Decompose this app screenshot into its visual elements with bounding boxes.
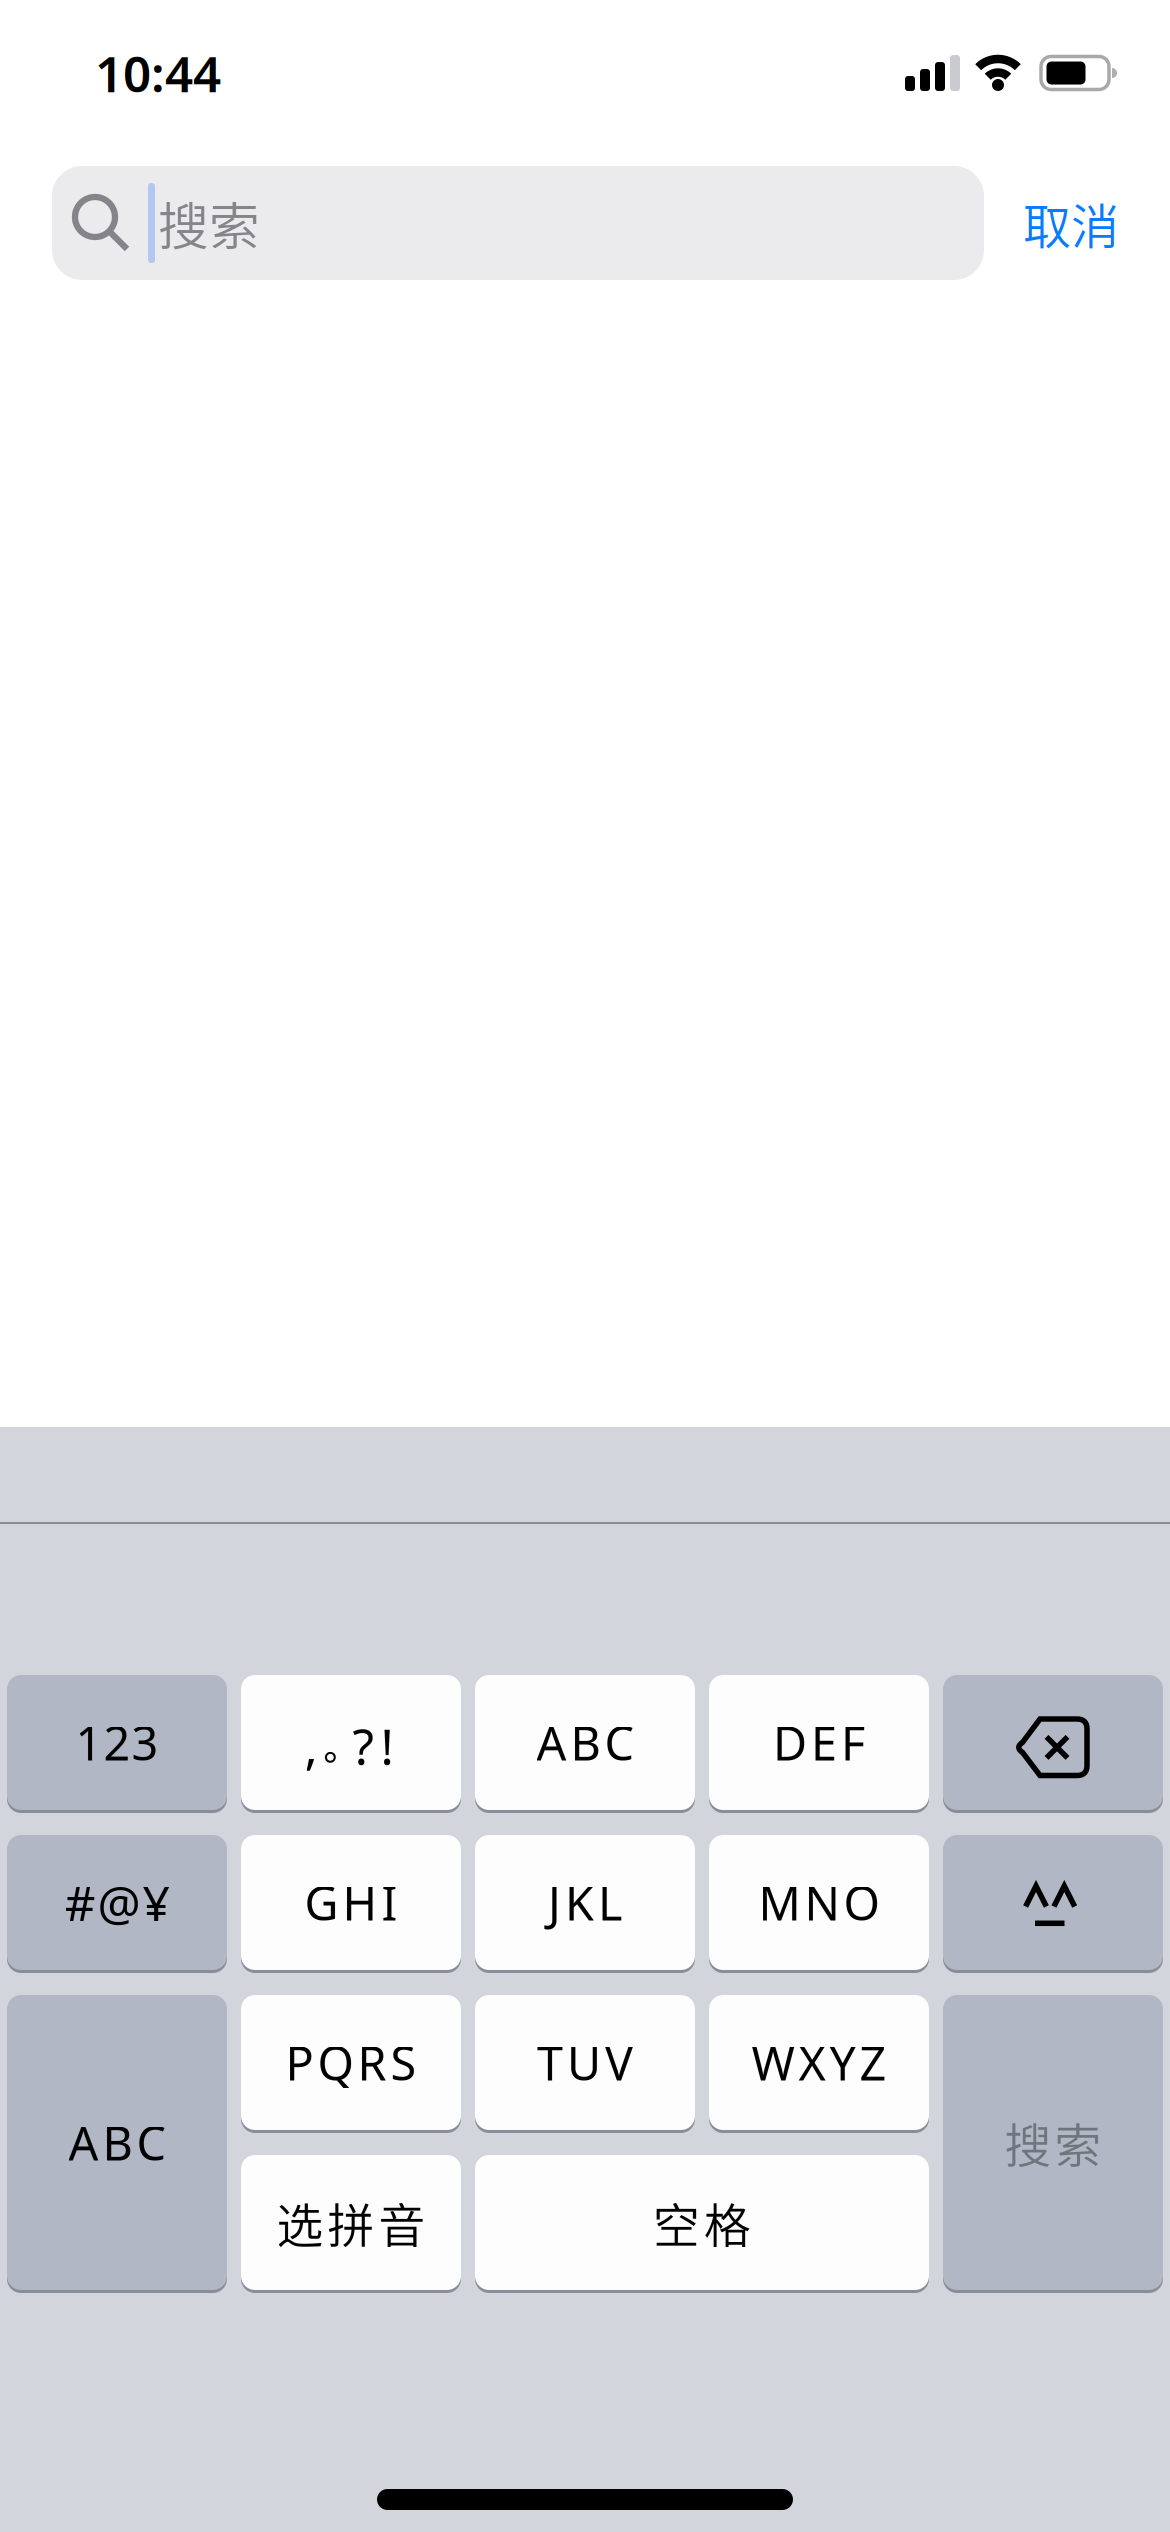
button[interactable]: ABC [7,1995,227,2290]
button[interactable]: 取消 [1023,188,1119,258]
staticText: 123 [75,1711,158,1773]
button[interactable]: PQRS [241,1995,461,2130]
button[interactable]: , [241,1675,461,1810]
button[interactable]: Pinyin separator [943,1835,1163,1970]
staticText: WXYZ [751,2031,886,2093]
staticText: 取消 [1023,188,1119,258]
button[interactable]: 选拼音 [241,2155,461,2290]
button[interactable]: #@¥ [7,1835,227,1970]
staticText: MNO [758,1871,879,1933]
staticText: TUV [537,2031,633,2093]
staticText: 搜索 [1004,2109,1101,2176]
button[interactable]: Delete [943,1675,1163,1810]
staticText: ｡ [323,1725,343,1764]
staticText: 空格 [653,2189,751,2256]
button[interactable]: TUV [475,1995,695,2130]
button[interactable]: ABC [475,1675,695,1810]
button[interactable]: 搜索 [52,166,984,280]
button[interactable]: 搜索 [943,1995,1163,2290]
staticText: ! [380,1713,393,1778]
button[interactable]: 空格 [475,2155,929,2290]
staticText: PQRS [285,2031,416,2093]
staticText: #@¥ [64,1871,169,1934]
button[interactable]: GHI [241,1835,461,1970]
button[interactable]: JKL [475,1835,695,1970]
staticText: ? [352,1713,373,1778]
staticText: GHI [304,1871,397,1933]
staticText: 选拼音 [276,2189,425,2256]
staticText: ABC [68,2111,165,2173]
staticText: , [304,1713,317,1778]
staticText: 搜索 [158,186,260,260]
button[interactable]: MNO [709,1835,929,1970]
button[interactable]: DEF [709,1675,929,1810]
staticText: DEF [773,1711,865,1773]
staticText: ABC [536,1711,633,1773]
button[interactable]: 123 [7,1675,227,1810]
staticText: 10:44 [95,40,221,106]
button[interactable]: WXYZ [709,1995,929,2130]
staticText: JKL [548,1871,622,1933]
